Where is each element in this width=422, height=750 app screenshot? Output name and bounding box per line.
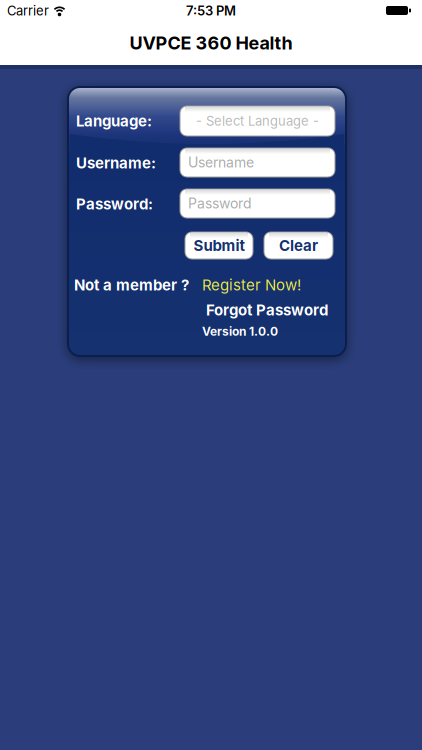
button[interactable]: - Select Language - <box>180 106 335 136</box>
button[interactable]: Password <box>180 189 335 218</box>
button[interactable]: Clear <box>264 232 333 259</box>
staticText: Password <box>188 195 252 212</box>
staticText: Clear <box>279 236 318 254</box>
staticText: 7:53 PM <box>186 3 236 19</box>
button[interactable]: Register Now! <box>202 276 301 294</box>
staticText: Register Now! <box>202 276 301 294</box>
staticText: Language: <box>76 112 152 130</box>
staticText: UVPCE 360 Health <box>129 32 292 54</box>
staticText: Forgot Password <box>206 301 328 319</box>
staticText: Username <box>188 154 254 171</box>
staticText: - Select Language - <box>196 113 319 129</box>
staticText: Username: <box>76 154 156 172</box>
staticText: Not a member ? <box>74 276 189 294</box>
staticText: Submit <box>193 236 244 254</box>
button[interactable]: Username <box>180 148 335 177</box>
button[interactable]: Forgot Password <box>206 301 328 319</box>
staticText: Version 1.0.0 <box>202 324 278 338</box>
staticText: Password: <box>76 195 153 213</box>
staticText: Carrier <box>7 3 49 19</box>
button[interactable]: Submit <box>185 232 253 259</box>
